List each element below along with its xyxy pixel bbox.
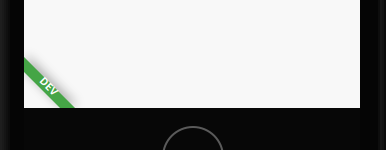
staticText: DEV bbox=[38, 79, 59, 93]
